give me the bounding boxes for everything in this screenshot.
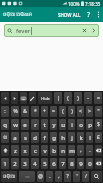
button[interactable]: a xyxy=(11,132,19,143)
button[interactable]: Space xyxy=(19,171,35,182)
button[interactable]: y xyxy=(50,119,57,130)
button[interactable]: & xyxy=(21,106,29,117)
button[interactable]: fever xyxy=(4,24,99,37)
button[interactable]: i xyxy=(68,119,75,130)
button[interactable]: = xyxy=(50,106,57,117)
staticText: a xyxy=(13,134,17,142)
button[interactable]: 3 xyxy=(21,158,29,169)
staticText: Hide xyxy=(41,96,50,101)
staticText: @ xyxy=(38,173,43,180)
button[interactable]: £ xyxy=(95,132,102,143)
staticText: . xyxy=(49,173,51,180)
button[interactable]: , xyxy=(77,145,84,156)
button[interactable]: @ xyxy=(37,171,44,182)
button[interactable]: Backspace xyxy=(95,145,102,156)
button[interactable]: t xyxy=(41,119,48,130)
button[interactable]: o xyxy=(77,119,84,130)
button[interactable]: q xyxy=(1,119,9,130)
button[interactable]: ଓଡ଼ିଆ xyxy=(1,171,17,182)
staticText: | xyxy=(57,95,60,102)
button[interactable]: SHOW ALL xyxy=(57,11,82,19)
staticText: - xyxy=(87,95,89,102)
staticText: fever xyxy=(16,27,31,35)
button[interactable]: 7 xyxy=(59,158,66,169)
button[interactable]: Previous xyxy=(1,92,9,104)
button[interactable]: | xyxy=(54,92,62,104)
button[interactable]: d xyxy=(31,132,39,143)
button[interactable]: z xyxy=(11,145,19,156)
button[interactable]: 2 xyxy=(11,158,19,169)
button[interactable]: ? xyxy=(64,171,71,182)
button[interactable]: l xyxy=(86,132,93,143)
button[interactable]: Help xyxy=(85,7,93,22)
button[interactable]: 5 xyxy=(41,158,48,169)
staticText: = xyxy=(97,95,100,102)
button[interactable]: = xyxy=(94,92,102,104)
button[interactable]: ( xyxy=(64,92,72,104)
button[interactable]: f xyxy=(41,132,48,143)
staticText: b xyxy=(52,147,56,155)
button[interactable]: h xyxy=(59,132,66,143)
button[interactable]: b xyxy=(50,145,57,156)
staticText: q xyxy=(3,121,7,129)
button[interactable]: 4 xyxy=(31,158,39,169)
button[interactable]: - xyxy=(84,92,92,104)
staticText: ଓଡ଼ିଆ ଅଭିଧାନ xyxy=(3,11,33,18)
staticText: h xyxy=(61,134,65,142)
button[interactable]: r xyxy=(31,119,39,130)
button[interactable]: m xyxy=(68,145,75,156)
button[interactable]: e xyxy=(21,119,29,130)
button[interactable]: s xyxy=(21,132,29,143)
button[interactable]: 1 xyxy=(1,158,9,169)
staticText: , xyxy=(80,147,82,154)
button[interactable]: 9 xyxy=(77,158,84,169)
button[interactable]: g xyxy=(50,132,57,143)
button[interactable]: ' xyxy=(73,171,80,182)
button[interactable]: Clear text xyxy=(80,25,88,36)
button[interactable]: / xyxy=(82,171,89,182)
button[interactable]: x xyxy=(21,145,29,156)
staticText: 0 xyxy=(88,160,92,168)
button[interactable]: n xyxy=(59,145,66,156)
button[interactable]: % xyxy=(11,106,19,117)
button[interactable]: v xyxy=(41,145,48,156)
button[interactable]: , xyxy=(55,171,62,182)
button[interactable]: Backspace xyxy=(95,158,102,169)
button[interactable]: " xyxy=(95,106,102,117)
staticText: + xyxy=(43,108,46,115)
staticText: ଓଡ଼ିଆ xyxy=(3,174,15,179)
button[interactable]: * xyxy=(31,106,39,117)
staticText: l xyxy=(89,134,91,142)
button[interactable]: 6 xyxy=(50,158,57,169)
staticText: . xyxy=(89,147,91,154)
staticText: 7 xyxy=(61,160,65,168)
button[interactable]: ) xyxy=(74,92,82,104)
staticText: d xyxy=(33,134,37,142)
button[interactable]: Keyboard settings xyxy=(20,92,27,104)
button[interactable]: 8 xyxy=(68,158,75,169)
button[interactable]: Search xyxy=(89,25,97,36)
button[interactable]: Hide xyxy=(38,92,52,104)
button[interactable]: ଖ xyxy=(1,132,9,143)
button[interactable]: . xyxy=(46,171,53,182)
button[interactable]: Next xyxy=(11,92,18,104)
button[interactable]: : xyxy=(1,106,9,117)
button[interactable]: $ xyxy=(95,119,102,130)
button[interactable]: c xyxy=(31,145,39,156)
button[interactable]: k xyxy=(77,132,84,143)
button[interactable]: p xyxy=(86,119,93,130)
button[interactable]: Search xyxy=(91,171,102,182)
button[interactable]: . xyxy=(86,145,93,156)
button[interactable]: < xyxy=(77,106,84,117)
button[interactable]: u xyxy=(59,119,66,130)
button[interactable]: More options xyxy=(94,7,102,22)
button[interactable]: w xyxy=(11,119,19,130)
button[interactable]: ) xyxy=(68,106,75,117)
button[interactable]: Shift xyxy=(1,145,9,156)
button[interactable]: 0 xyxy=(86,158,93,169)
button[interactable]: j xyxy=(68,132,75,143)
button[interactable]: Handwriting xyxy=(29,92,36,104)
button[interactable]: + xyxy=(41,106,48,117)
button[interactable]: > xyxy=(86,106,93,117)
button[interactable]: ( xyxy=(59,106,66,117)
